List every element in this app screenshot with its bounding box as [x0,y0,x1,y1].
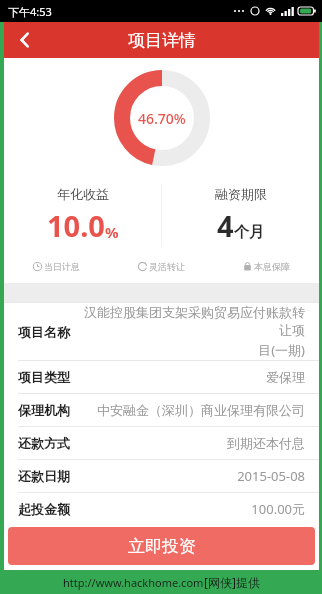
staticText: 项目名称 [18,324,70,340]
staticText: 融资期限 [215,186,267,202]
staticText: 还款日期 [18,468,70,484]
staticText: 当日计息 [44,261,80,272]
button[interactable]: 立即投资 [8,527,315,565]
staticText: 项目详情 [128,30,196,51]
staticText: 10.0 [47,206,105,245]
button[interactable]: 起投金额 [4,493,319,524]
button[interactable]: 项目名称 [4,303,319,360]
button[interactable]: 还款方式 [4,427,319,459]
staticText: 项目类型 [18,369,70,385]
staticText: 年化收益 [57,186,109,202]
staticText: 2015-05-08 [80,467,305,485]
staticText: 汉能控股集团支架采购贸易应付账款转让项 目(一期) [80,304,305,359]
button[interactable]: 当日计息 [4,253,109,279]
staticText: 4 [217,206,234,245]
staticText: 爱保理 [80,369,305,385]
staticText: 灵活转让 [149,261,185,272]
staticText: 下午4:53 [8,4,52,19]
staticText: 立即投资 [128,536,196,557]
staticText: 到期还本付息 [80,435,305,451]
staticText: 保理机构 [18,402,70,418]
staticText: 100.00元 [80,500,305,518]
staticText: 本息保障 [254,261,290,272]
staticText: http://www.hackhome.com [63,575,204,590]
staticText: % [105,222,119,242]
button[interactable]: 还款日期 [4,460,319,492]
button[interactable]: 返回 [4,22,46,58]
button[interactable]: 灵活转让 [109,253,214,279]
staticText: 起投金额 [18,501,70,517]
staticText: 还款方式 [18,435,70,451]
staticText: 46.70% [138,109,186,128]
button[interactable]: 本息保障 [214,253,319,279]
staticText: [网侠]提供 [204,574,260,590]
button[interactable]: 保理机构 [4,394,319,426]
button[interactable]: 项目类型 [4,361,319,393]
staticText: 中安融金（深圳）商业保理有限公司 [80,402,305,418]
staticText: 个月 [234,223,264,242]
